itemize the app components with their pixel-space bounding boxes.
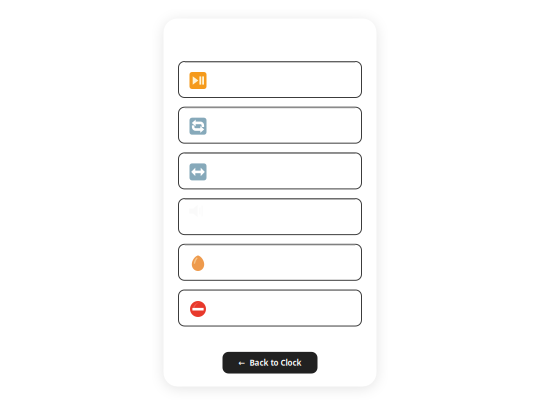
button[interactable]: Skip [178, 153, 361, 189]
button[interactable]: Play or pause [178, 61, 361, 97]
button[interactable]: Option [178, 199, 361, 235]
button[interactable]: Egg timer [178, 244, 361, 280]
staticText: ← Back to Clock [238, 357, 301, 368]
button[interactable]: ← Back to Clock [222, 352, 317, 373]
button[interactable]: Repeat [178, 107, 361, 143]
button[interactable]: Stop [178, 290, 361, 326]
